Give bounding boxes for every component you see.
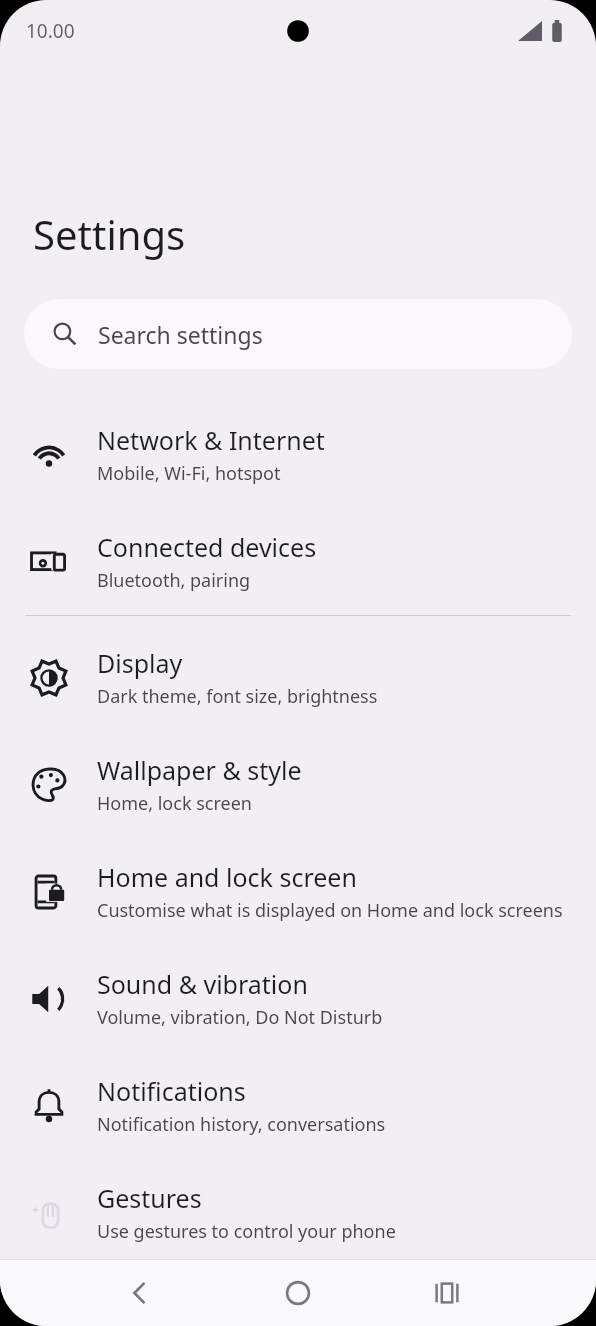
staticText: Search settings [98,319,263,350]
staticText: Wallpaper & style [97,753,302,787]
staticText: 10.00 [26,18,75,44]
staticText: Notifications [97,1074,246,1108]
staticText: Sound & vibration [97,967,308,1001]
staticText: Bluetooth, pairing [97,568,251,593]
staticText: Volume, vibration, Do Not Disturb [97,1005,383,1030]
staticText: Settings [33,207,186,261]
staticText: Customise what is displayed on Home and … [97,898,563,923]
staticText: Notification history, conversations [97,1112,386,1137]
staticText: Mobile, Wi-Fi, hotspot [97,461,281,486]
staticText: Gestures [97,1181,202,1215]
button[interactable]: Search settings [24,299,572,369]
button[interactable]: Sound & vibration [0,945,596,1052]
button[interactable]: Network & Internet [0,401,596,508]
staticText: Network & Internet [97,423,325,457]
button[interactable]: Home [267,1262,329,1324]
staticText: Use gestures to control your phone [97,1219,396,1244]
staticText: Home and lock screen [97,860,357,894]
button[interactable]: Notifications [0,1052,596,1159]
button[interactable]: Wallpaper & style [0,731,596,838]
button[interactable]: Home and lock screen [0,838,596,945]
staticText: Dark theme, font size, brightness [97,684,378,709]
staticText: Home, lock screen [97,791,252,816]
staticText: Connected devices [97,530,317,564]
button[interactable]: Back [109,1262,171,1324]
button[interactable]: Connected devices [0,508,596,615]
staticText: Display [97,646,183,680]
button[interactable]: Recents [416,1262,478,1324]
button[interactable]: Display [0,616,596,731]
button[interactable]: Gestures [0,1159,596,1266]
